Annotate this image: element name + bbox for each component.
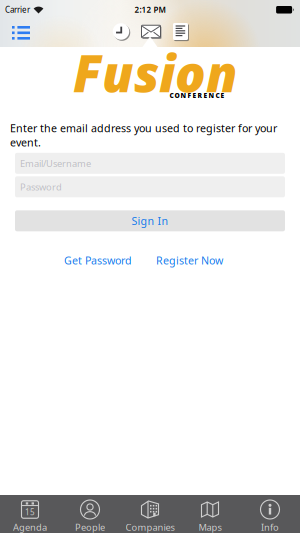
staticText: Password	[20, 181, 62, 193]
staticText: Carrier	[5, 4, 30, 15]
staticText: Enter the email address you used to regi…	[10, 121, 277, 149]
button[interactable]: Documents	[172, 22, 188, 40]
staticText: Maps	[198, 521, 221, 533]
button[interactable]: Password	[15, 176, 285, 197]
button[interactable]: 15	[0, 495, 60, 533]
button[interactable]: Menu	[0, 21, 30, 44]
staticText: 2:12 PM	[134, 4, 165, 15]
staticText: Email/Username	[20, 157, 91, 169]
staticText: CONFERENCE	[169, 91, 224, 100]
staticText: 15	[25, 507, 35, 517]
button[interactable]: Register Now	[156, 253, 223, 267]
staticText: Register Now	[156, 253, 223, 267]
staticText: Info	[261, 521, 279, 533]
staticText: People	[75, 521, 105, 533]
button[interactable]: Companies	[120, 495, 180, 533]
staticText: Get Password	[64, 253, 132, 267]
button[interactable]: People	[60, 495, 120, 533]
staticText: Companies	[125, 521, 174, 533]
button[interactable]: Sign In	[15, 210, 285, 231]
button[interactable]: Email	[141, 24, 161, 38]
button[interactable]: Maps	[180, 495, 240, 533]
staticText: Sign In	[131, 214, 168, 228]
staticText: Fusion	[73, 39, 238, 106]
button[interactable]: Recent	[112, 23, 129, 40]
staticText: Agenda	[13, 521, 47, 533]
button[interactable]: Info	[240, 495, 300, 533]
button[interactable]: Get Password	[64, 253, 132, 267]
button[interactable]: Email/Username	[15, 153, 285, 174]
